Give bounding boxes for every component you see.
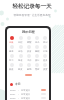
button[interactable]: 更多 bbox=[41, 54, 49, 62]
button[interactable]: 查看更多 bbox=[25, 74, 32, 76]
button[interactable]: 待办 bbox=[33, 36, 41, 44]
staticText: 家庭 bbox=[9, 68, 14, 71]
staticText: 09:02 bbox=[10, 97, 16, 100]
staticText: 健康 bbox=[9, 50, 14, 53]
button[interactable]: 笔记 bbox=[41, 36, 49, 44]
staticText: 工作 bbox=[27, 59, 32, 62]
button[interactable]: 心情 bbox=[41, 45, 49, 53]
button[interactable]: 旅行 bbox=[33, 54, 41, 62]
staticText: 运动 bbox=[18, 50, 23, 53]
staticText: 日程 bbox=[18, 41, 23, 44]
staticText: 09:01 bbox=[10, 93, 16, 96]
staticText: 阅读 bbox=[18, 59, 23, 62]
staticText: 今日 bbox=[15, 82, 21, 86]
button[interactable]: 理财 bbox=[33, 63, 41, 71]
button[interactable]: 朋友 bbox=[16, 63, 25, 71]
button[interactable]: 家庭 bbox=[7, 63, 16, 71]
staticText: 待办 bbox=[35, 41, 40, 44]
staticText: 旅行 bbox=[35, 59, 40, 62]
button[interactable]: 记账 bbox=[7, 36, 16, 44]
button[interactable]: 睡眠 bbox=[33, 45, 41, 53]
button[interactable]: 健康 bbox=[7, 45, 16, 53]
button[interactable]: 09:02 bbox=[10, 96, 46, 100]
button[interactable]: 今日 bbox=[10, 82, 49, 86]
staticText: 理财 bbox=[35, 68, 40, 71]
button[interactable]: 饮食 bbox=[25, 45, 33, 53]
staticText: 设置 bbox=[43, 68, 48, 71]
button[interactable]: 工作 bbox=[25, 54, 33, 62]
button[interactable]: 设置 bbox=[41, 63, 49, 71]
staticText: 轻松记录每一天 bbox=[12, 3, 52, 10]
staticText: 智能日程管理 · 让生活更有条理 bbox=[13, 13, 51, 17]
button[interactable]: 阅读 bbox=[16, 54, 25, 62]
button[interactable]: 09:00 bbox=[10, 88, 46, 92]
staticText: 我的日程 bbox=[22, 30, 35, 34]
staticText: 购物 bbox=[27, 68, 32, 71]
staticText: 更多 bbox=[43, 59, 48, 62]
staticText: 饮食 bbox=[27, 50, 32, 53]
button[interactable]: 运动 bbox=[16, 45, 25, 53]
button[interactable]: 日程 bbox=[16, 36, 25, 44]
staticText: 朋友 bbox=[18, 68, 23, 71]
button[interactable]: 学习 bbox=[7, 54, 16, 62]
staticText: 记账 bbox=[9, 41, 14, 44]
button[interactable]: 购物 bbox=[25, 63, 33, 71]
staticText: 日常安排 bbox=[21, 93, 30, 96]
staticText: 学习 bbox=[9, 59, 14, 62]
staticText: 09:00 bbox=[10, 89, 16, 92]
staticText: 日常安排 bbox=[21, 97, 30, 100]
staticText: 日常安排 bbox=[21, 89, 30, 92]
staticText: 睡眠 bbox=[35, 50, 40, 53]
staticText: 笔记 bbox=[43, 41, 48, 44]
button[interactable]: 提醒 bbox=[25, 36, 33, 44]
staticText: 提醒 bbox=[27, 41, 32, 44]
button[interactable]: 09:01 bbox=[10, 92, 46, 96]
staticText: 心情 bbox=[43, 50, 48, 53]
